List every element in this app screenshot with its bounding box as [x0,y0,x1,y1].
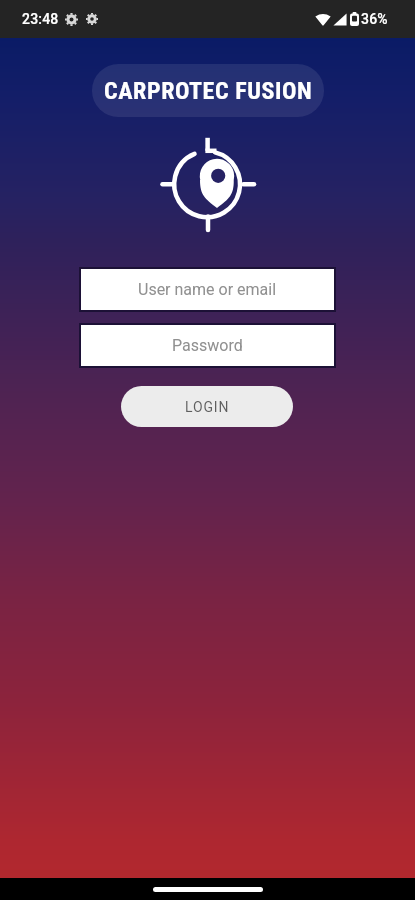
staticText: CARPROTEC FUSION [104,77,313,105]
button[interactable]: CARPROTEC FUSION [92,64,324,117]
staticText: 23:48 [22,11,59,27]
staticText: User name or email [138,280,277,299]
staticText: 36% [361,11,388,27]
button[interactable]: Password [81,325,334,366]
button[interactable]: LOGIN [121,386,293,427]
staticText: Password [172,336,243,355]
other: Status icon [86,13,98,25]
staticText: LOGIN [185,399,230,415]
other: CarProtec Fusion logo [161,137,255,231]
button[interactable]: User name or email [81,269,334,310]
other: Status icon [65,13,78,26]
